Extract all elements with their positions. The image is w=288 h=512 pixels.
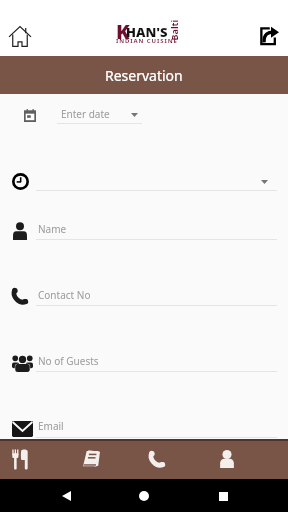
staticText: Name: [38, 222, 67, 236]
staticText: Enter date: [61, 107, 110, 121]
button[interactable]: Home: [131, 483, 157, 509]
button[interactable]: Enter date: [57, 104, 142, 128]
button[interactable]: Recent apps: [210, 483, 236, 509]
staticText: K: [116, 18, 130, 45]
button[interactable]: Home: [4, 20, 36, 52]
button[interactable]: No of Guests: [36, 351, 277, 372]
staticText: No of Guests: [38, 354, 99, 368]
staticText: Contact No: [38, 288, 91, 302]
button[interactable]: Account: [216, 439, 288, 479]
button[interactable]: Call: [144, 439, 216, 479]
staticText: Email: [38, 419, 64, 433]
button[interactable]: Contact No: [36, 285, 277, 306]
staticText: Balti: [167, 19, 179, 40]
button[interactable]: Name: [36, 219, 277, 240]
staticText: HAN'S: [126, 23, 168, 41]
button[interactable]: Back: [53, 483, 79, 509]
button[interactable]: [36, 172, 277, 192]
button[interactable]: Share: [252, 19, 284, 51]
button[interactable]: Menu: [0, 439, 72, 479]
button[interactable]: Email: [36, 416, 277, 438]
staticText: Reservation: [105, 66, 183, 85]
staticText: INDIAN CUISINE: [116, 37, 178, 45]
button[interactable]: Reservation: [72, 439, 144, 479]
